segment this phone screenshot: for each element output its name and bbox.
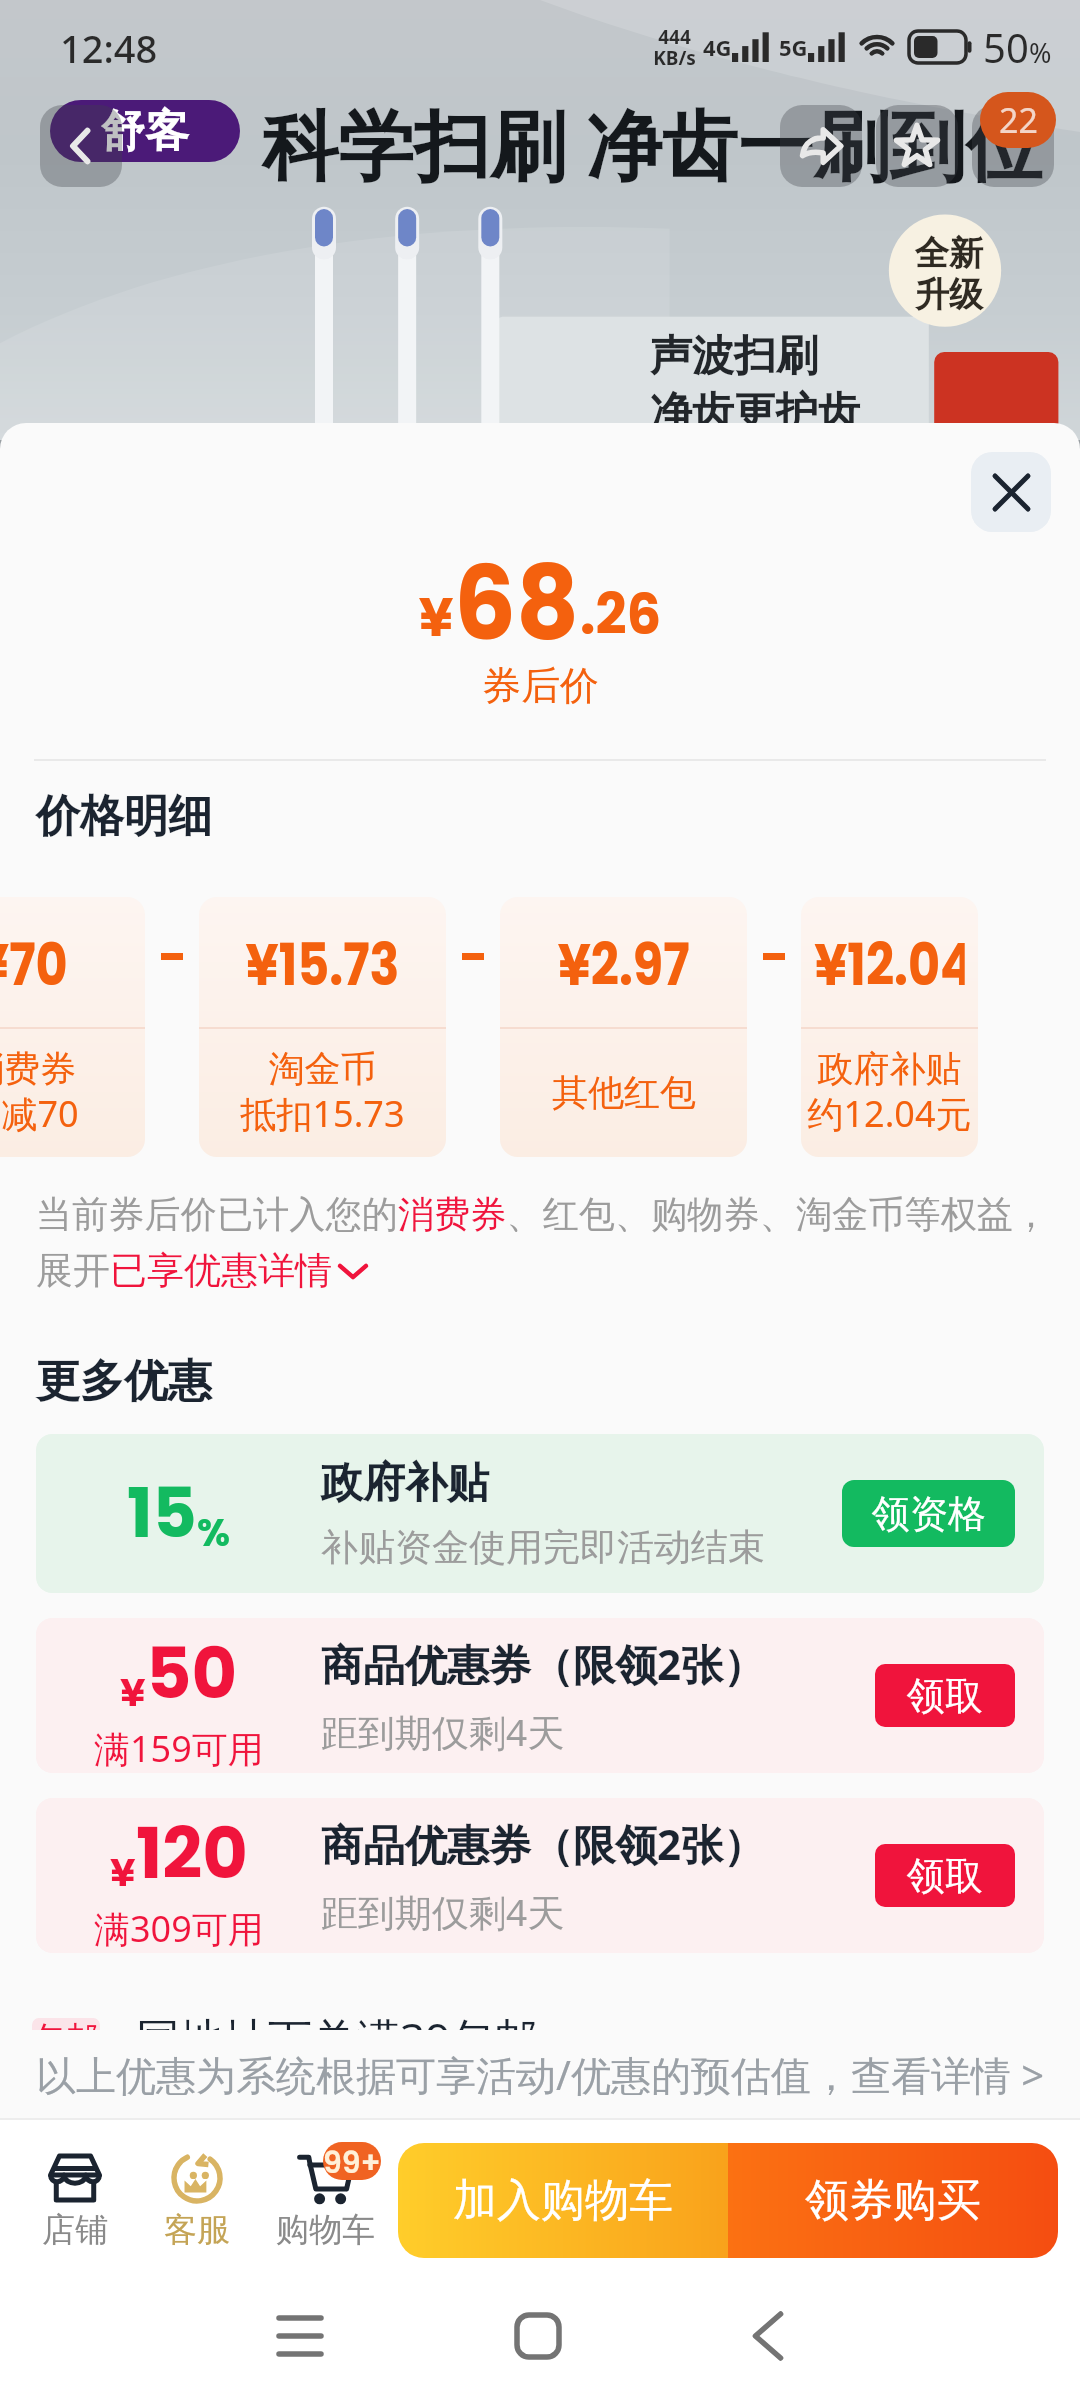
button[interactable]: Cart	[972, 105, 1054, 187]
staticText: 价格明细	[36, 789, 212, 844]
staticText: ¥2.97	[558, 924, 690, 1005]
staticText: 店铺	[42, 2209, 108, 2251]
button[interactable]: 领取	[875, 1664, 1015, 1727]
button[interactable]: 客服	[136, 2149, 258, 2251]
staticText: 科学扫刷 净齿一刷到位	[262, 92, 1042, 196]
staticText: 加入购物车	[453, 2173, 673, 2228]
staticText: 补贴资金使用完即活动结束	[321, 1524, 765, 1571]
staticText: 99+	[323, 2142, 381, 2180]
staticText: 消费券 立减70	[0, 1046, 79, 1138]
staticText: 12:48	[60, 22, 158, 74]
staticText: 购物车	[276, 2209, 375, 2251]
staticText: 淘金币 抵扣15.73	[240, 1046, 405, 1138]
staticText: 客服	[164, 2209, 230, 2251]
staticText: ¥	[110, 1846, 136, 1899]
staticText: 当前券后价已计入您的消费券、红包、购物券、淘金币等权益，	[36, 1191, 1049, 1238]
button[interactable]: Back	[733, 2301, 803, 2371]
button[interactable]: 15	[36, 1434, 1044, 1593]
staticText: 券后价	[482, 661, 599, 710]
button[interactable]: 领资格	[842, 1480, 1015, 1547]
staticText: 政府补贴	[321, 1457, 489, 1510]
staticText: 50	[983, 20, 1029, 74]
staticText: ¥	[419, 579, 454, 655]
button[interactable]: ¥70	[0, 897, 145, 1157]
staticText: 22	[999, 97, 1038, 143]
button[interactable]: Share	[780, 105, 862, 187]
button[interactable]: 店铺	[14, 2149, 136, 2251]
button[interactable]: ¥	[36, 1798, 1044, 1953]
button[interactable]: 以上优惠为系统根据可享活动/优惠的预估值，查看详情 >	[36, 2047, 1045, 2102]
staticText: 声波扫刷 净齿更护齿	[650, 330, 860, 439]
button[interactable]: ¥12.04	[801, 897, 978, 1157]
button[interactable]: 领取	[875, 1844, 1015, 1907]
staticText: 领券购买	[805, 2173, 981, 2228]
staticText: %	[1029, 34, 1052, 71]
staticText: 更多优惠	[36, 1354, 212, 1409]
staticText: 领取	[907, 1852, 983, 1900]
staticText: 15	[127, 1466, 197, 1561]
staticText: 120	[136, 1804, 248, 1902]
staticText: ¥	[120, 1666, 146, 1719]
staticText: ¥70	[0, 924, 68, 1005]
staticText: 满309可用	[94, 1904, 264, 1953]
button[interactable]: 展开已享优惠详情	[36, 1247, 332, 1294]
staticText: 商品优惠券（限领2张）	[321, 1815, 766, 1872]
staticText: 满159可用	[94, 1724, 264, 1773]
staticText: 全新 升级	[915, 232, 983, 316]
staticText: 距到期仅剩4天	[321, 1706, 565, 1757]
staticText: 商品优惠券（限领2张）	[321, 1635, 766, 1692]
button[interactable]: ¥15.73	[199, 897, 446, 1157]
staticText: 同地址下单满39包邮	[136, 2008, 539, 2068]
staticText: ¥15.73	[246, 924, 399, 1005]
button[interactable]: 领券购买	[728, 2143, 1058, 2258]
button[interactable]: Close	[971, 452, 1051, 532]
button[interactable]: Back	[40, 105, 122, 187]
staticText: 444 KB/s	[653, 24, 696, 70]
staticText: ¥12.04	[814, 924, 965, 1005]
button[interactable]: ¥	[36, 1618, 1044, 1773]
staticText: .26	[580, 574, 661, 654]
staticText: 包邮	[33, 2018, 99, 2058]
staticText: 50	[146, 1624, 238, 1722]
staticText: 政府补贴 约12.04元	[807, 1046, 972, 1138]
staticText: 68	[454, 532, 580, 660]
button[interactable]: Favorite	[876, 105, 958, 187]
button[interactable]: 加入购物车	[398, 2143, 728, 2258]
staticText: 5G	[779, 32, 808, 62]
staticText: 舒客	[101, 104, 189, 159]
button[interactable]: 99+	[258, 2149, 392, 2251]
button[interactable]: Home	[503, 2301, 573, 2371]
staticText: 其他红包	[552, 1070, 696, 1115]
button[interactable]: Recents	[265, 2301, 335, 2371]
staticText: 距到期仅剩4天	[321, 1886, 565, 1937]
button[interactable]: ¥2.97	[500, 897, 747, 1157]
staticText: 领取	[907, 1672, 983, 1720]
staticText: 4G	[703, 32, 732, 62]
staticText: %	[197, 1506, 231, 1559]
staticText: 领资格	[872, 1490, 986, 1538]
